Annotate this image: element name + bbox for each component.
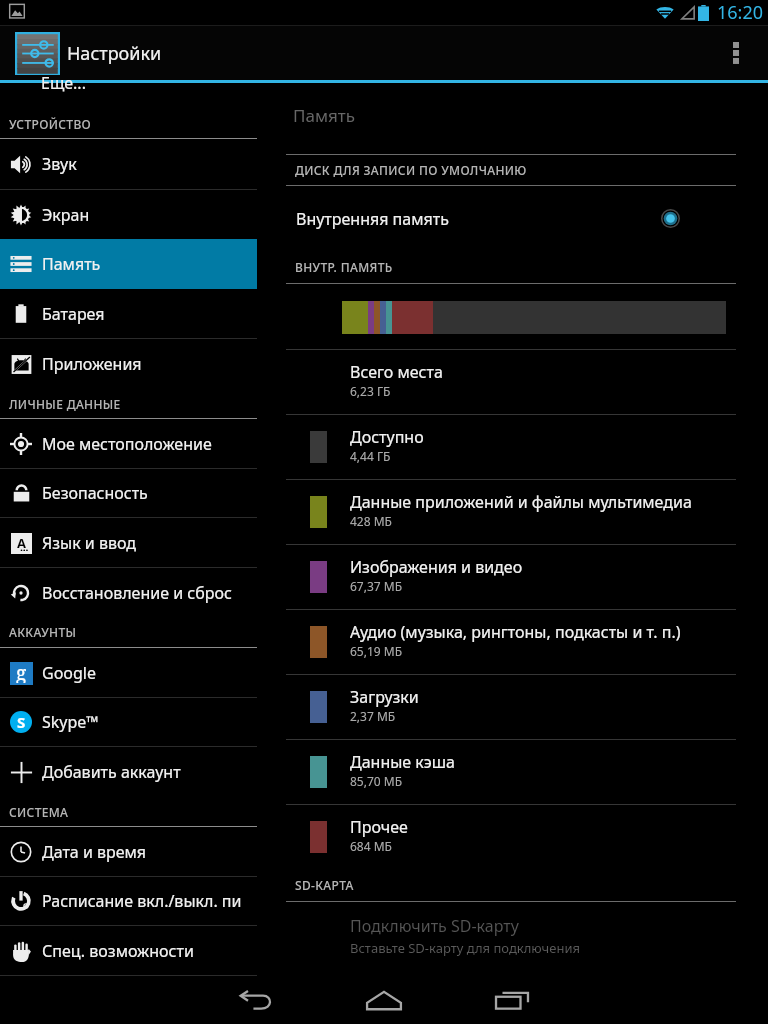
button[interactable]: Данные кэша xyxy=(257,739,768,804)
staticText: 2,37 МБ xyxy=(350,708,396,724)
button[interactable]: Дата и время xyxy=(0,827,257,876)
staticText: АККАУНТЫ xyxy=(9,624,77,640)
button[interactable]: Расписание вкл./выкл. пи xyxy=(0,877,257,925)
button[interactable]: Аудио (музыка, рингтоны, подкасты и т. п… xyxy=(257,609,768,674)
staticText: Настройки xyxy=(67,41,162,66)
button[interactable]: Доступно xyxy=(257,414,768,479)
button[interactable]: Прочее xyxy=(257,804,768,869)
staticText: Skype™ xyxy=(42,711,99,733)
button[interactable]: Безопасность xyxy=(0,469,257,517)
button[interactable]: g xyxy=(0,648,257,697)
staticText: Экран xyxy=(42,204,90,226)
button[interactable]: Recent apps xyxy=(448,976,576,1024)
button[interactable]: Данные приложений и файлы мультимедиа xyxy=(257,479,768,544)
staticText: Изображения и видео xyxy=(350,556,523,578)
staticText: Память xyxy=(293,104,355,127)
staticText: Данные кэша xyxy=(350,751,455,773)
staticText: Добавить аккаунт xyxy=(42,761,181,783)
staticText: Восстановление и сброс xyxy=(42,582,232,604)
staticText: Спец. возможности xyxy=(42,940,194,962)
staticText: ВНУТР. ПАМЯТЬ xyxy=(295,259,393,275)
staticText: Аудио (музыка, рингтоны, подкасты и т. п… xyxy=(350,621,681,643)
staticText: Подключить SD-карту xyxy=(350,915,519,937)
staticText: Мое местоположение xyxy=(42,433,212,455)
staticText: Безопасность xyxy=(42,482,148,504)
staticText: Внутренняя память xyxy=(296,208,449,230)
staticText: СИСТЕМА xyxy=(9,804,69,820)
staticText: 85,70 МБ xyxy=(350,773,403,789)
button[interactable]: Память xyxy=(0,239,257,289)
staticText: 4,44 ГБ xyxy=(350,448,391,464)
button[interactable]: Приложения xyxy=(0,339,257,389)
staticText: Доступно xyxy=(350,426,424,448)
staticText: ЛИЧНЫЕ ДАННЫЕ xyxy=(9,396,121,412)
staticText: УСТРОЙСТВО xyxy=(9,116,92,132)
button[interactable]: More options xyxy=(704,26,768,80)
button[interactable]: Батарея xyxy=(0,289,257,338)
button[interactable]: Загрузки xyxy=(257,674,768,739)
staticText: Расписание вкл./выкл. пи xyxy=(42,890,242,912)
button[interactable]: Внутренняя память xyxy=(257,186,768,251)
staticText: SD-КАРТА xyxy=(295,877,354,893)
button[interactable]: Всего места xyxy=(257,349,768,414)
staticText: g xyxy=(16,660,27,683)
staticText: Дата и время xyxy=(42,841,147,863)
staticText: 6,23 ГБ xyxy=(350,383,391,399)
staticText: Еще... xyxy=(41,72,86,94)
staticText: 65,19 МБ xyxy=(350,643,403,659)
staticText: S xyxy=(17,712,26,732)
staticText: Батарея xyxy=(42,303,105,325)
staticText: Google xyxy=(42,662,97,684)
button[interactable]: Добавить аккаунт xyxy=(0,747,257,797)
staticText: 67,37 МБ xyxy=(350,578,403,594)
staticText: Звук xyxy=(42,153,77,175)
button[interactable]: Изображения и видео xyxy=(257,544,768,609)
button[interactable]: Спец. возможности xyxy=(0,926,257,975)
button[interactable]: Back xyxy=(192,976,320,1024)
staticText: Память xyxy=(42,253,101,275)
staticText: ДИСК ДЛЯ ЗАПИСИ ПО УМОЛЧАНИЮ xyxy=(295,162,527,178)
button[interactable]: Звук xyxy=(0,139,257,189)
staticText: A xyxy=(17,534,26,552)
button[interactable]: A xyxy=(0,518,257,567)
staticText: Данные приложений и файлы мультимедиа xyxy=(350,491,692,513)
staticText: 428 МБ xyxy=(350,513,392,529)
staticText: Вставьте SD-карту для подключения xyxy=(350,939,580,957)
staticText: Загрузки xyxy=(350,686,419,708)
staticText: 684 МБ xyxy=(350,838,392,854)
staticText: Приложения xyxy=(42,353,142,375)
button[interactable]: Восстановление и сброс xyxy=(0,568,257,617)
button[interactable]: Home xyxy=(320,976,448,1024)
button[interactable]: Мое местоположение xyxy=(0,419,257,468)
button[interactable]: S xyxy=(0,698,257,746)
staticText: 16:20 xyxy=(717,0,764,25)
staticText: Всего места xyxy=(350,361,443,383)
staticText: Язык и ввод xyxy=(42,532,137,554)
staticText: Прочее xyxy=(350,816,408,838)
button[interactable]: Экран xyxy=(0,190,257,239)
